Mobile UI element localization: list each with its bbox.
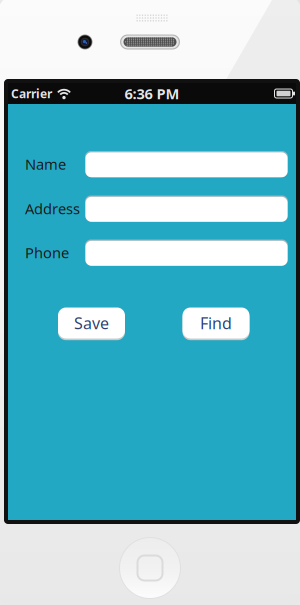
staticText: Carrier	[11, 85, 52, 101]
staticText: Find	[200, 312, 232, 334]
button[interactable]: Save	[57, 306, 125, 340]
button[interactable]: Find	[182, 306, 250, 340]
staticText: 6:36 PM	[124, 84, 179, 103]
staticText: Phone	[25, 243, 69, 262]
staticText: Name	[25, 154, 66, 174]
staticText: Address	[25, 199, 80, 218]
staticText: Save	[74, 312, 109, 334]
